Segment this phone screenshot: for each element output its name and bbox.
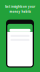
staticText: Get insights on your (5, 5, 35, 8)
staticText: money habits (9, 10, 30, 13)
